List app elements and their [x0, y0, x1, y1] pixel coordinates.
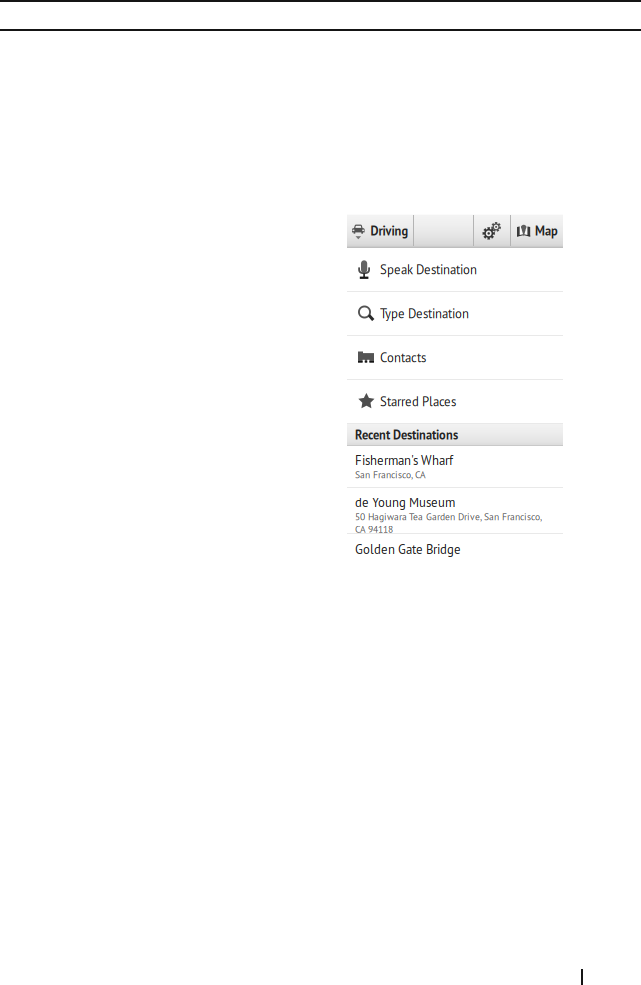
button[interactable]: Fisherman's Wharf — [347, 446, 563, 488]
staticText: Speak Destination — [380, 261, 477, 278]
staticText: Contacts — [380, 349, 426, 366]
staticText: Fisherman's Wharf — [355, 452, 453, 469]
button[interactable]: de Young Museum — [347, 488, 563, 534]
staticText: San Francisco, CA — [355, 469, 426, 481]
button[interactable]: Driving — [347, 214, 413, 248]
button[interactable]: Type Destination — [347, 292, 563, 336]
button[interactable]: Map — [511, 214, 563, 248]
button[interactable]: Route options — [474, 214, 510, 248]
staticText: de Young Museum — [355, 494, 455, 511]
staticText: Golden Gate Bridge — [355, 541, 461, 558]
staticText: Driving — [370, 223, 408, 239]
staticText: Map — [535, 223, 558, 239]
staticText: CA 94118 — [355, 523, 393, 535]
button[interactable]: Contacts — [347, 336, 563, 380]
button[interactable]: Speak Destination — [347, 248, 563, 292]
staticText: Type Destination — [380, 305, 469, 322]
button[interactable]: Golden Gate Bridge — [347, 534, 563, 557]
button[interactable]: Starred Places — [347, 380, 563, 424]
staticText: 50 Hagiwara Tea Garden Drive, San Franci… — [355, 511, 542, 523]
staticText: Starred Places — [380, 393, 456, 410]
staticText: Recent Destinations — [355, 427, 458, 443]
button[interactable]: Search along route — [414, 214, 473, 248]
